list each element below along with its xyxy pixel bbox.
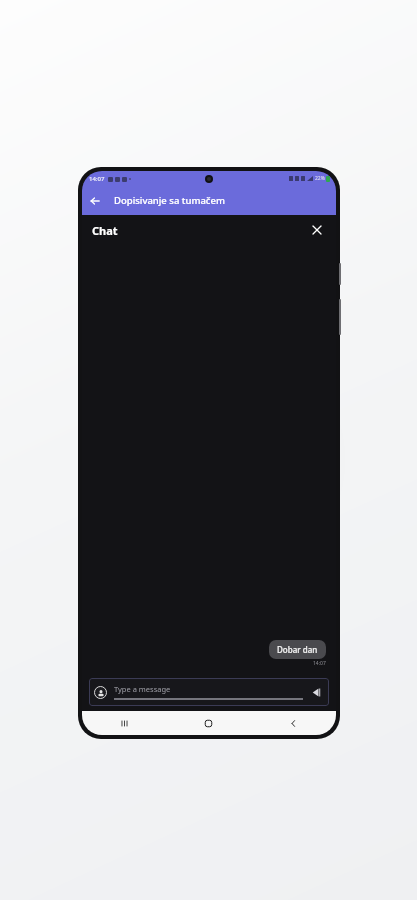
button[interactable]: Profile [89, 678, 329, 706]
staticText: Chat [92, 223, 118, 238]
staticText: 14:07 [89, 175, 105, 183]
button[interactable]: Profile [94, 686, 107, 699]
button[interactable]: Back [82, 188, 108, 214]
button[interactable]: Back [251, 711, 336, 735]
button[interactable]: Dobar dan [269, 640, 326, 659]
staticText: 14:07 [313, 660, 326, 667]
staticText: Type a message [114, 684, 171, 694]
staticText: Dopisivanje sa tumačem [114, 194, 225, 207]
staticText: 22% [315, 175, 325, 182]
button[interactable]: Recent apps [82, 711, 166, 735]
button[interactable]: Close chat [308, 221, 326, 239]
staticText: Dobar dan [277, 644, 318, 655]
button[interactable]: Send message [308, 684, 324, 700]
button[interactable]: Home [166, 711, 251, 735]
